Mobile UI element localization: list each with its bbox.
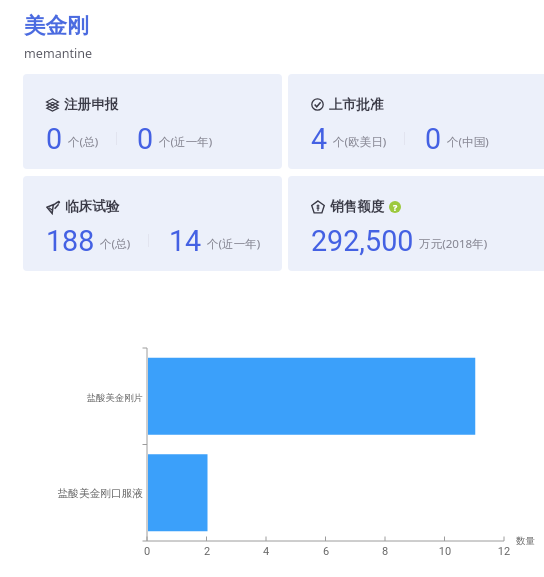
- staticText: 292,500: [311, 224, 414, 258]
- staticText: ?: [393, 201, 398, 213]
- staticText: 数量: [516, 535, 535, 547]
- staticText: 0: [46, 122, 63, 156]
- button[interactable]: 上市批准: [288, 74, 544, 169]
- staticText: 万元(2018年): [419, 236, 488, 252]
- staticText: 14: [169, 224, 202, 258]
- staticText: 个(总): [100, 236, 131, 252]
- staticText: 个(欧美日): [333, 134, 387, 150]
- staticText: 注册申报: [64, 96, 119, 113]
- staticText: 上市批准: [329, 96, 384, 113]
- staticText: 临床试验: [65, 198, 120, 215]
- staticText: 个(中国): [447, 134, 489, 150]
- staticText: 0: [137, 122, 154, 156]
- button[interactable]: Help: [389, 201, 401, 213]
- staticText: 6: [311, 545, 341, 558]
- staticText: 2: [192, 545, 222, 558]
- staticText: 4: [311, 122, 328, 156]
- staticText: 12: [489, 545, 519, 558]
- staticText: 个(总): [68, 134, 99, 150]
- button[interactable]: 销售额度: [288, 176, 544, 271]
- staticText: 0: [132, 545, 162, 558]
- staticText: 188: [46, 224, 95, 258]
- staticText: 销售额度: [330, 198, 385, 215]
- staticText: 美金刚: [24, 12, 89, 39]
- staticText: 8: [370, 545, 400, 558]
- staticText: 10: [430, 545, 460, 558]
- staticText: 4: [251, 545, 281, 558]
- button[interactable]: 临床试验: [23, 176, 282, 271]
- staticText: 0: [425, 122, 442, 156]
- staticText: 个(近一年): [207, 236, 261, 252]
- staticText: 盐酸美金刚片: [43, 392, 143, 404]
- button[interactable]: 注册申报: [23, 74, 282, 169]
- staticText: 盐酸美金刚口服液: [43, 487, 143, 500]
- staticText: memantine: [24, 45, 93, 62]
- staticText: 个(近一年): [159, 134, 213, 150]
